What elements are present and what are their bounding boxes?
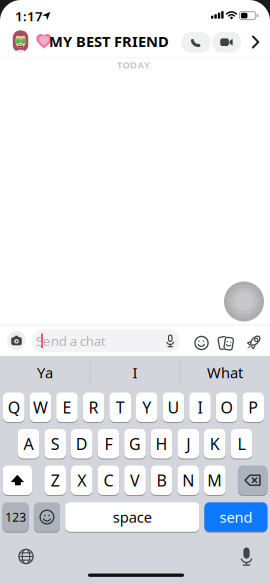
button[interactable]: send <box>204 502 267 532</box>
staticText: 1:17 <box>15 7 43 25</box>
staticText: Y <box>142 397 151 418</box>
staticText: TODAY <box>117 59 150 71</box>
button[interactable]: Dictate <box>240 547 252 567</box>
staticText: space <box>113 507 152 527</box>
staticText: L <box>237 433 245 454</box>
button[interactable]: Ya <box>1 355 89 389</box>
button[interactable]: V <box>124 465 146 495</box>
button[interactable]: Shift <box>3 465 32 495</box>
button[interactable]: J <box>177 429 199 458</box>
button[interactable]: Emoji <box>194 336 209 350</box>
staticText: N <box>182 470 194 491</box>
staticText: P <box>248 397 258 418</box>
button[interactable]: I <box>189 392 211 422</box>
staticText: V <box>130 470 140 491</box>
button[interactable]: W <box>30 392 51 422</box>
button[interactable]: Y <box>136 392 158 422</box>
button[interactable]: A <box>18 429 39 458</box>
button[interactable]: C <box>98 465 119 495</box>
button[interactable]: M <box>204 465 226 495</box>
staticText: E <box>62 397 71 418</box>
button[interactable]: Stickers <box>217 334 234 351</box>
button[interactable]: Call <box>181 32 210 52</box>
staticText: What <box>207 363 243 382</box>
staticText: I <box>132 363 137 382</box>
staticText: R <box>89 397 99 418</box>
button[interactable]: P <box>242 392 264 422</box>
staticText: S <box>51 433 60 454</box>
staticText: I <box>197 397 202 418</box>
staticText: O <box>221 397 233 418</box>
staticText: Q <box>8 397 20 418</box>
button[interactable]: More <box>248 34 262 50</box>
button[interactable]: Video call <box>212 32 241 52</box>
staticText: 123 <box>5 509 26 525</box>
button[interactable]: R <box>83 392 104 422</box>
staticText: G <box>129 433 141 454</box>
staticText: Z <box>51 470 60 491</box>
button[interactable]: U <box>163 392 184 422</box>
button[interactable]: T <box>109 392 131 422</box>
staticText: M <box>207 470 222 491</box>
button[interactable]: Z <box>44 465 66 495</box>
button[interactable]: O <box>216 392 237 422</box>
staticText: K <box>210 433 220 454</box>
staticText: MY BEST FRIEND <box>49 32 169 51</box>
staticText: F <box>104 433 112 454</box>
button[interactable]: Next keyboard <box>18 549 34 564</box>
button[interactable]: Profile <box>7 28 33 54</box>
button[interactable]: Camera <box>7 331 26 350</box>
staticText: D <box>76 433 88 454</box>
button[interactable]: L <box>231 429 252 458</box>
staticText: H <box>156 433 168 454</box>
button[interactable]: K <box>204 429 226 458</box>
button[interactable]: X <box>71 465 93 495</box>
staticText: U <box>167 397 179 418</box>
staticText: A <box>24 433 34 454</box>
staticText: J <box>186 433 190 454</box>
button[interactable]: D <box>71 429 93 458</box>
button[interactable]: Emoji <box>34 502 60 532</box>
button[interactable]: Send a chat <box>31 330 180 352</box>
staticText: C <box>103 470 113 491</box>
button[interactable]: G <box>124 429 146 458</box>
button[interactable]: I <box>91 355 179 389</box>
button[interactable]: H <box>151 429 172 458</box>
button[interactable]: B <box>151 465 172 495</box>
button[interactable]: E <box>56 392 78 422</box>
button[interactable]: S <box>44 429 66 458</box>
staticText: B <box>157 470 167 491</box>
button[interactable]: F <box>98 429 119 458</box>
button[interactable]: N <box>177 465 199 495</box>
staticText: X <box>77 470 86 491</box>
button[interactable]: What <box>181 355 269 389</box>
staticText: send <box>219 507 252 527</box>
button[interactable]: 123 <box>3 502 29 532</box>
staticText: T <box>116 397 125 418</box>
staticText: W <box>33 397 48 418</box>
button[interactable]: Games <box>246 334 263 351</box>
staticText: Ya <box>37 363 53 382</box>
button[interactable]: Q <box>3 392 25 422</box>
button[interactable]: Delete <box>238 465 267 495</box>
button[interactable]: space <box>65 502 199 532</box>
staticText: Send a chat <box>36 332 106 350</box>
